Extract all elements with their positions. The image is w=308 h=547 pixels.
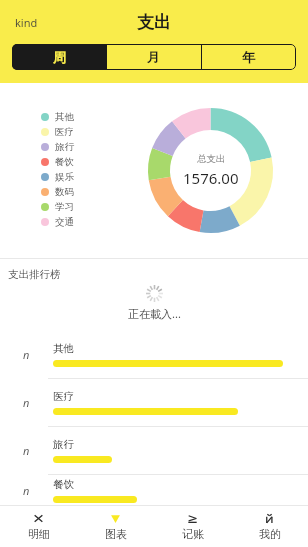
button[interactable]: 月 (106, 44, 201, 70)
staticText: 旅行 (55, 141, 74, 153)
staticText: 餐饮 (53, 478, 74, 491)
staticText: n (23, 483, 30, 498)
staticText: 娱乐 (55, 171, 74, 183)
staticText: n (23, 347, 30, 362)
button[interactable]: 年 (201, 44, 296, 70)
button[interactable]: 记账 (154, 506, 231, 547)
staticText: 我的 (259, 527, 281, 541)
button[interactable]: n (0, 427, 308, 475)
button[interactable]: 我的 (231, 506, 308, 547)
staticText: 交通 (55, 216, 74, 228)
button[interactable]: 图表 (77, 506, 154, 547)
staticText: 支出排行榜 (8, 268, 61, 281)
staticText: 记账 (182, 527, 204, 541)
staticText: 1576.00 (183, 168, 239, 188)
staticText: 其他 (53, 342, 74, 355)
staticText: kind (15, 15, 38, 30)
staticText: 月 (147, 49, 160, 65)
button[interactable]: n (0, 475, 308, 505)
staticText: n (23, 443, 30, 458)
staticText: 医疗 (53, 390, 74, 403)
staticText: 明细 (28, 527, 50, 541)
staticText: 学习 (55, 201, 74, 213)
staticText: 医疗 (55, 126, 74, 138)
staticText: 支出 (137, 12, 171, 33)
staticText: 其他 (55, 111, 74, 123)
staticText: 旅行 (53, 438, 74, 451)
staticText: 餐饮 (55, 156, 74, 168)
staticText: n (23, 395, 30, 410)
button[interactable]: 周 (12, 44, 106, 70)
staticText: 数码 (55, 186, 74, 198)
staticText: 周 (53, 49, 66, 65)
button[interactable]: n (0, 379, 308, 427)
staticText: 正在載入... (128, 306, 181, 321)
staticText: 总支出 (197, 153, 226, 165)
staticText: 年 (242, 49, 255, 65)
button[interactable]: n (0, 331, 308, 379)
staticText: 图表 (105, 527, 127, 541)
button[interactable]: 明细 (0, 506, 77, 547)
